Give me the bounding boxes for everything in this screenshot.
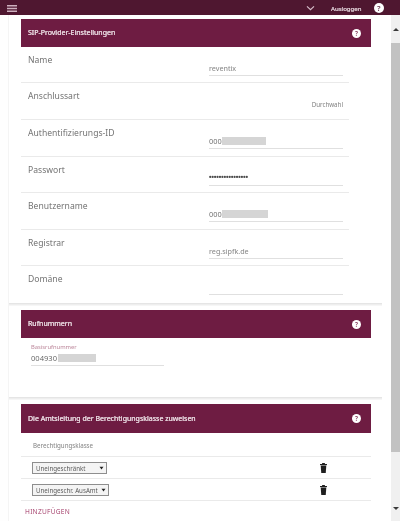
staticText: ? — [377, 3, 381, 13]
staticText: Benutzername — [28, 200, 88, 212]
staticText: Uneingeschränkt — [36, 464, 86, 472]
staticText: ? — [355, 320, 359, 329]
staticText: Anschlussart — [28, 90, 80, 102]
staticText: ? — [355, 29, 359, 38]
staticText: reg.sipfk.de — [209, 246, 249, 256]
button[interactable]: Ausloggen — [329, 2, 364, 14]
staticText: reventix — [209, 63, 237, 73]
button[interactable]: Help — [352, 414, 361, 423]
button[interactable]: Help — [352, 29, 361, 38]
button[interactable]: Delete — [316, 483, 330, 497]
staticText: Die Amtsleitung der Berechtigungsklasse … — [28, 414, 196, 424]
staticText: Uneingeschr. AusAmt — [36, 486, 98, 494]
staticText: Registrar — [28, 237, 65, 249]
button[interactable]: Delete — [316, 461, 330, 475]
staticText: Durchwahl — [209, 100, 343, 108]
staticText: SIP-Provider-Einstellungen — [28, 28, 116, 38]
button[interactable]: Help — [352, 320, 361, 329]
button[interactable]: Help — [372, 1, 386, 15]
staticText: Ausloggen — [331, 4, 362, 12]
button[interactable]: Expand menu — [303, 1, 317, 15]
button[interactable]: HINZUFÜGEN — [21, 501, 371, 521]
staticText: Domäne — [28, 273, 63, 285]
staticText: Passwort — [28, 164, 65, 176]
staticText: 000 — [209, 209, 222, 219]
staticText: Berechtigungsklasse — [33, 441, 94, 449]
button[interactable]: Menu — [4, 1, 20, 15]
button[interactable]: Uneingeschränkt — [32, 462, 107, 474]
button[interactable]: Scroll up — [391, 15, 400, 43]
staticText: HINZUFÜGEN — [25, 507, 70, 516]
staticText: Authentifizierungs-ID — [28, 127, 115, 139]
staticText: Basisrufnummer — [31, 343, 77, 351]
button[interactable]: Scroll down — [391, 495, 400, 521]
staticText: ? — [355, 414, 359, 423]
staticText: Name — [28, 54, 53, 66]
button[interactable]: Uneingeschr. AusAmt — [32, 484, 109, 496]
staticText: Rufnummern — [28, 319, 72, 329]
staticText: 000 — [209, 136, 222, 146]
staticText: 004930 — [31, 353, 58, 363]
